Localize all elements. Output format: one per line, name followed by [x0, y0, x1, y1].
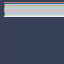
button[interactable]: [4, 13, 64, 14]
button[interactable]: [4, 7, 64, 8]
button[interactable]: [4, 6, 64, 7]
button[interactable]: [4, 8, 64, 9]
button[interactable]: [4, 15, 64, 16]
button[interactable]: [4, 12, 64, 13]
button[interactable]: [4, 4, 64, 5]
button[interactable]: [4, 14, 64, 15]
button[interactable]: [4, 10, 64, 11]
button[interactable]: [4, 5, 64, 6]
button[interactable]: [4, 11, 64, 12]
